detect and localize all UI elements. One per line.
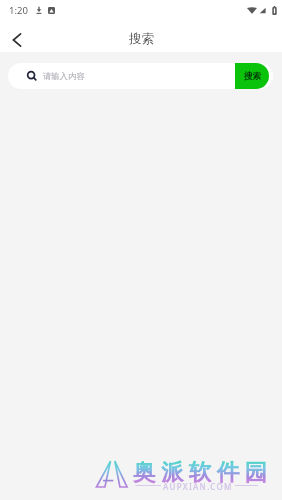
button[interactable]: 搜索 [235, 63, 269, 89]
staticText: 请输入内容 [43, 71, 85, 81]
staticText: 搜索 [129, 31, 154, 47]
staticText: 1:20 [9, 4, 28, 17]
button[interactable]: Back [0, 24, 34, 56]
staticText: 搜索 [244, 71, 261, 82]
staticText: 奥派软件园 [133, 458, 273, 486]
staticText: AUPXIAN.COM [163, 481, 233, 492]
